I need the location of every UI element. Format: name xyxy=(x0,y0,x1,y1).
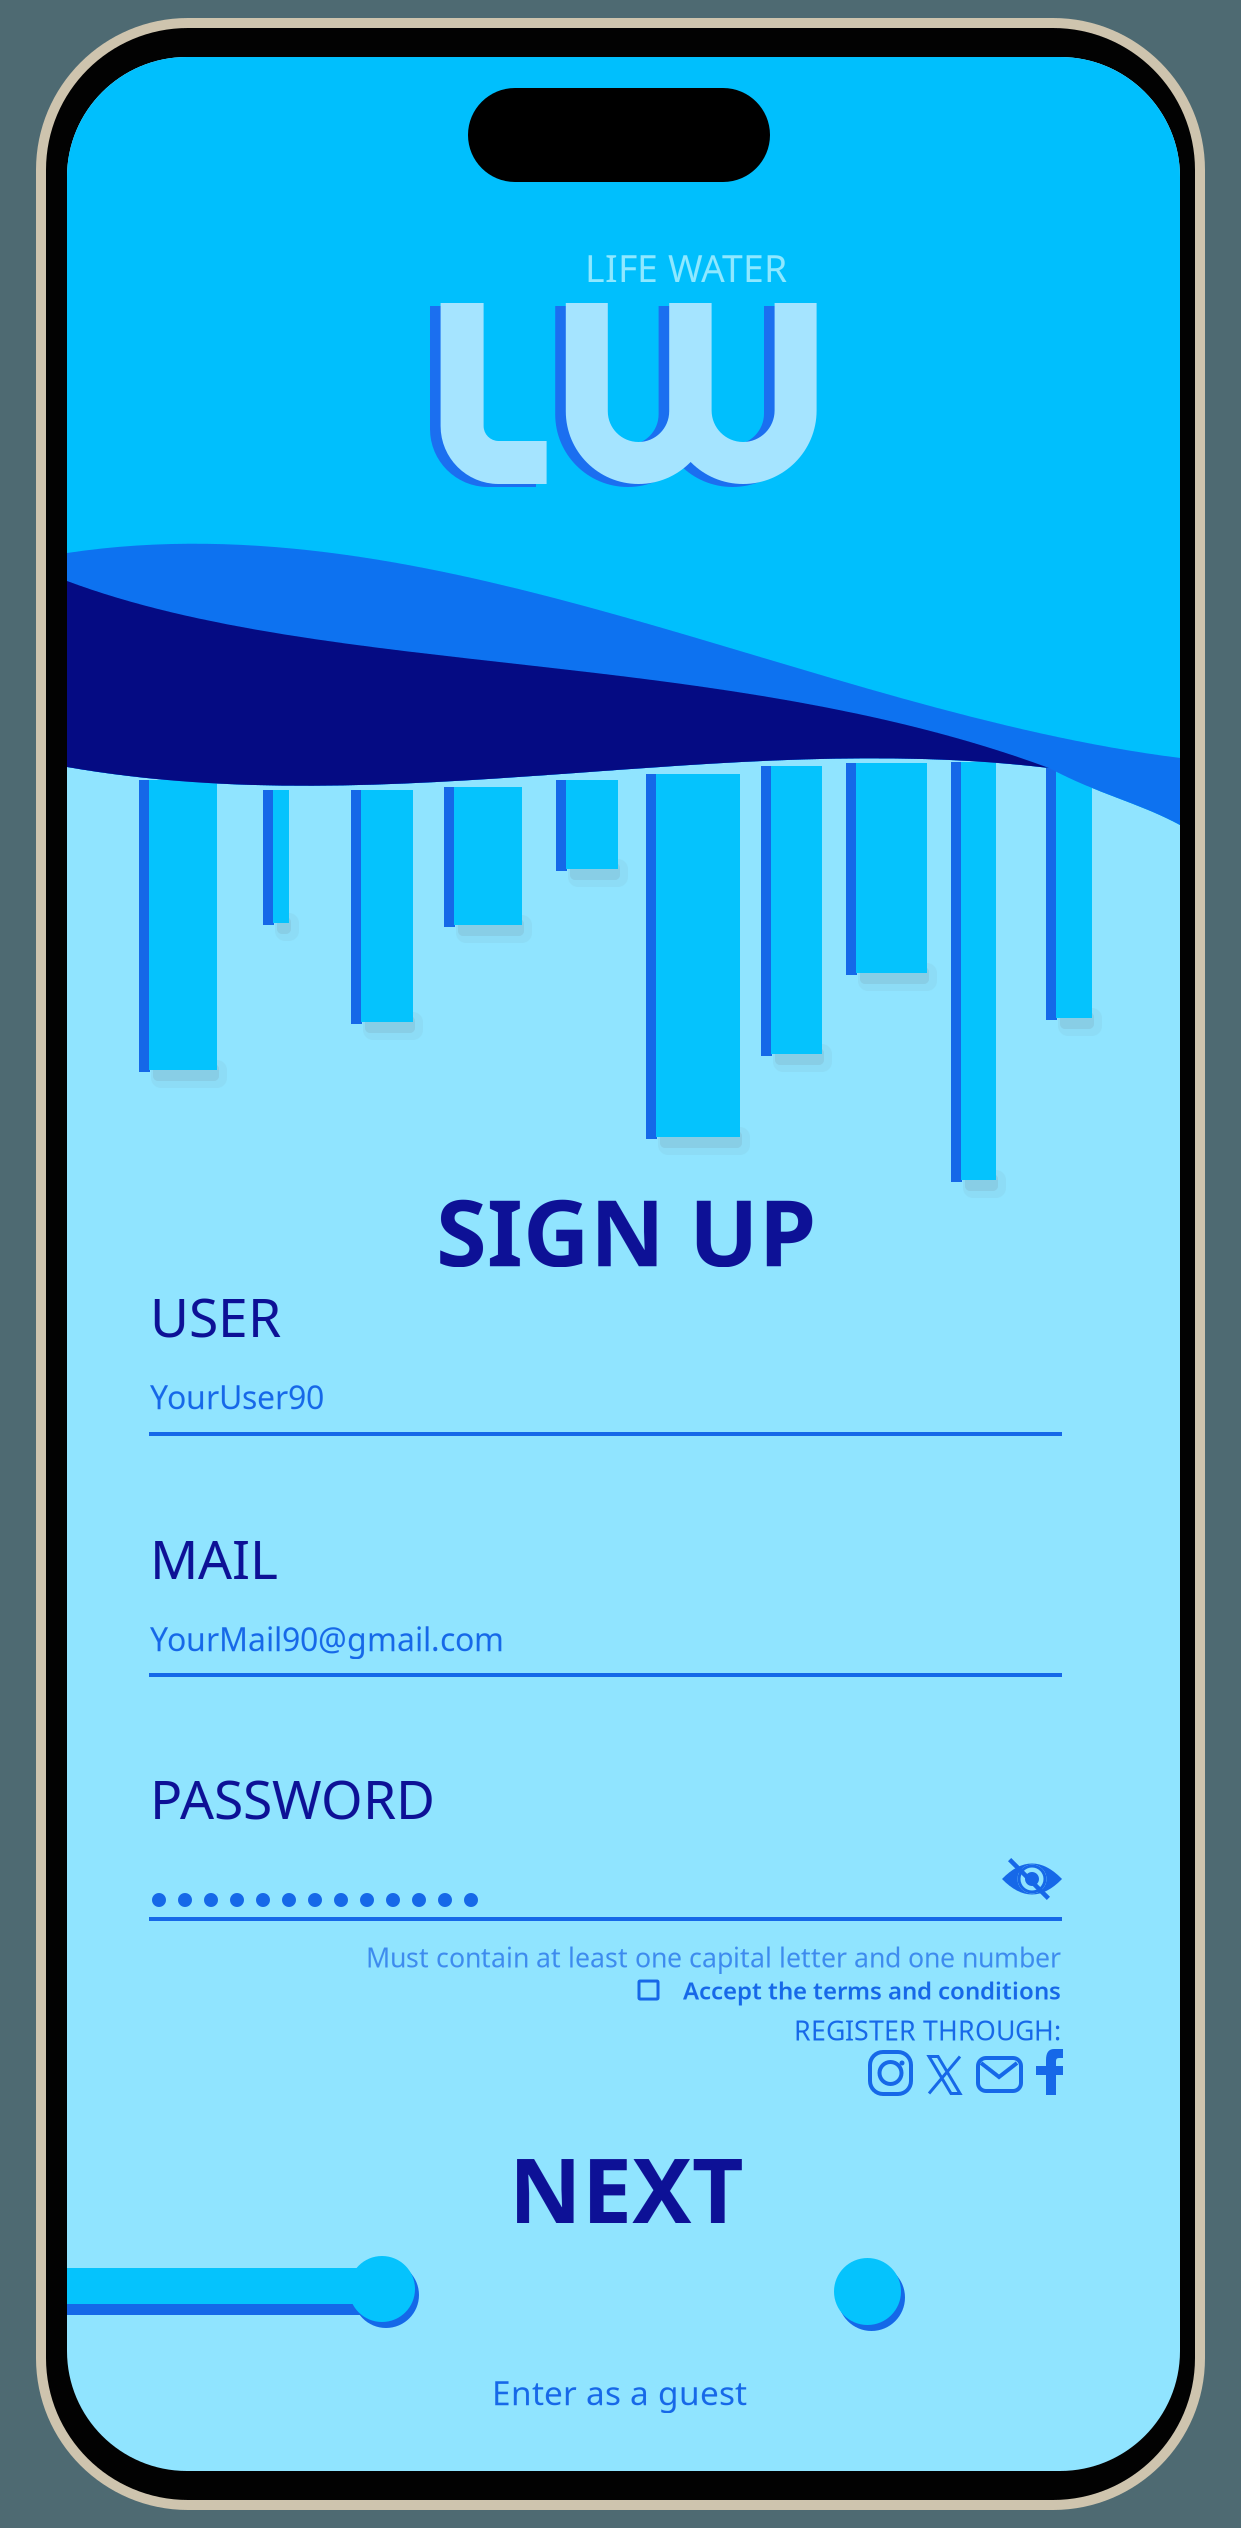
staticText: USER xyxy=(150,1281,281,1352)
button[interactable]: Enter as a guest xyxy=(492,2370,747,2415)
button[interactable]: Accept the terms and conditions xyxy=(639,1981,658,1999)
staticText: YourUser90 xyxy=(150,1376,324,1418)
staticText: PASSWORD xyxy=(150,1763,435,1834)
staticText: Enter as a guest xyxy=(492,2370,747,2415)
staticText: LIFE WATER xyxy=(585,243,787,293)
button[interactable]: Register with X xyxy=(927,2055,962,2095)
staticText: Must contain at least one capital letter… xyxy=(366,1939,1061,1975)
staticText: NEXT xyxy=(509,2129,744,2248)
button[interactable]: NEXT xyxy=(509,2129,744,2248)
button[interactable]: Register with Instagram xyxy=(870,2052,911,2094)
staticText: Accept the terms and conditions xyxy=(683,1974,1061,2006)
button[interactable]: Register with Facebook xyxy=(1035,2049,1063,2095)
staticText: MAIL xyxy=(150,1523,278,1594)
staticText: SIGN UP xyxy=(436,1169,816,1292)
staticText: REGISTER THROUGH: xyxy=(794,2012,1061,2048)
staticText: YourMail90@gmail.com xyxy=(150,1618,504,1660)
button[interactable]: Show password xyxy=(1000,1856,1064,1902)
button[interactable]: Register with email xyxy=(978,2058,1021,2091)
